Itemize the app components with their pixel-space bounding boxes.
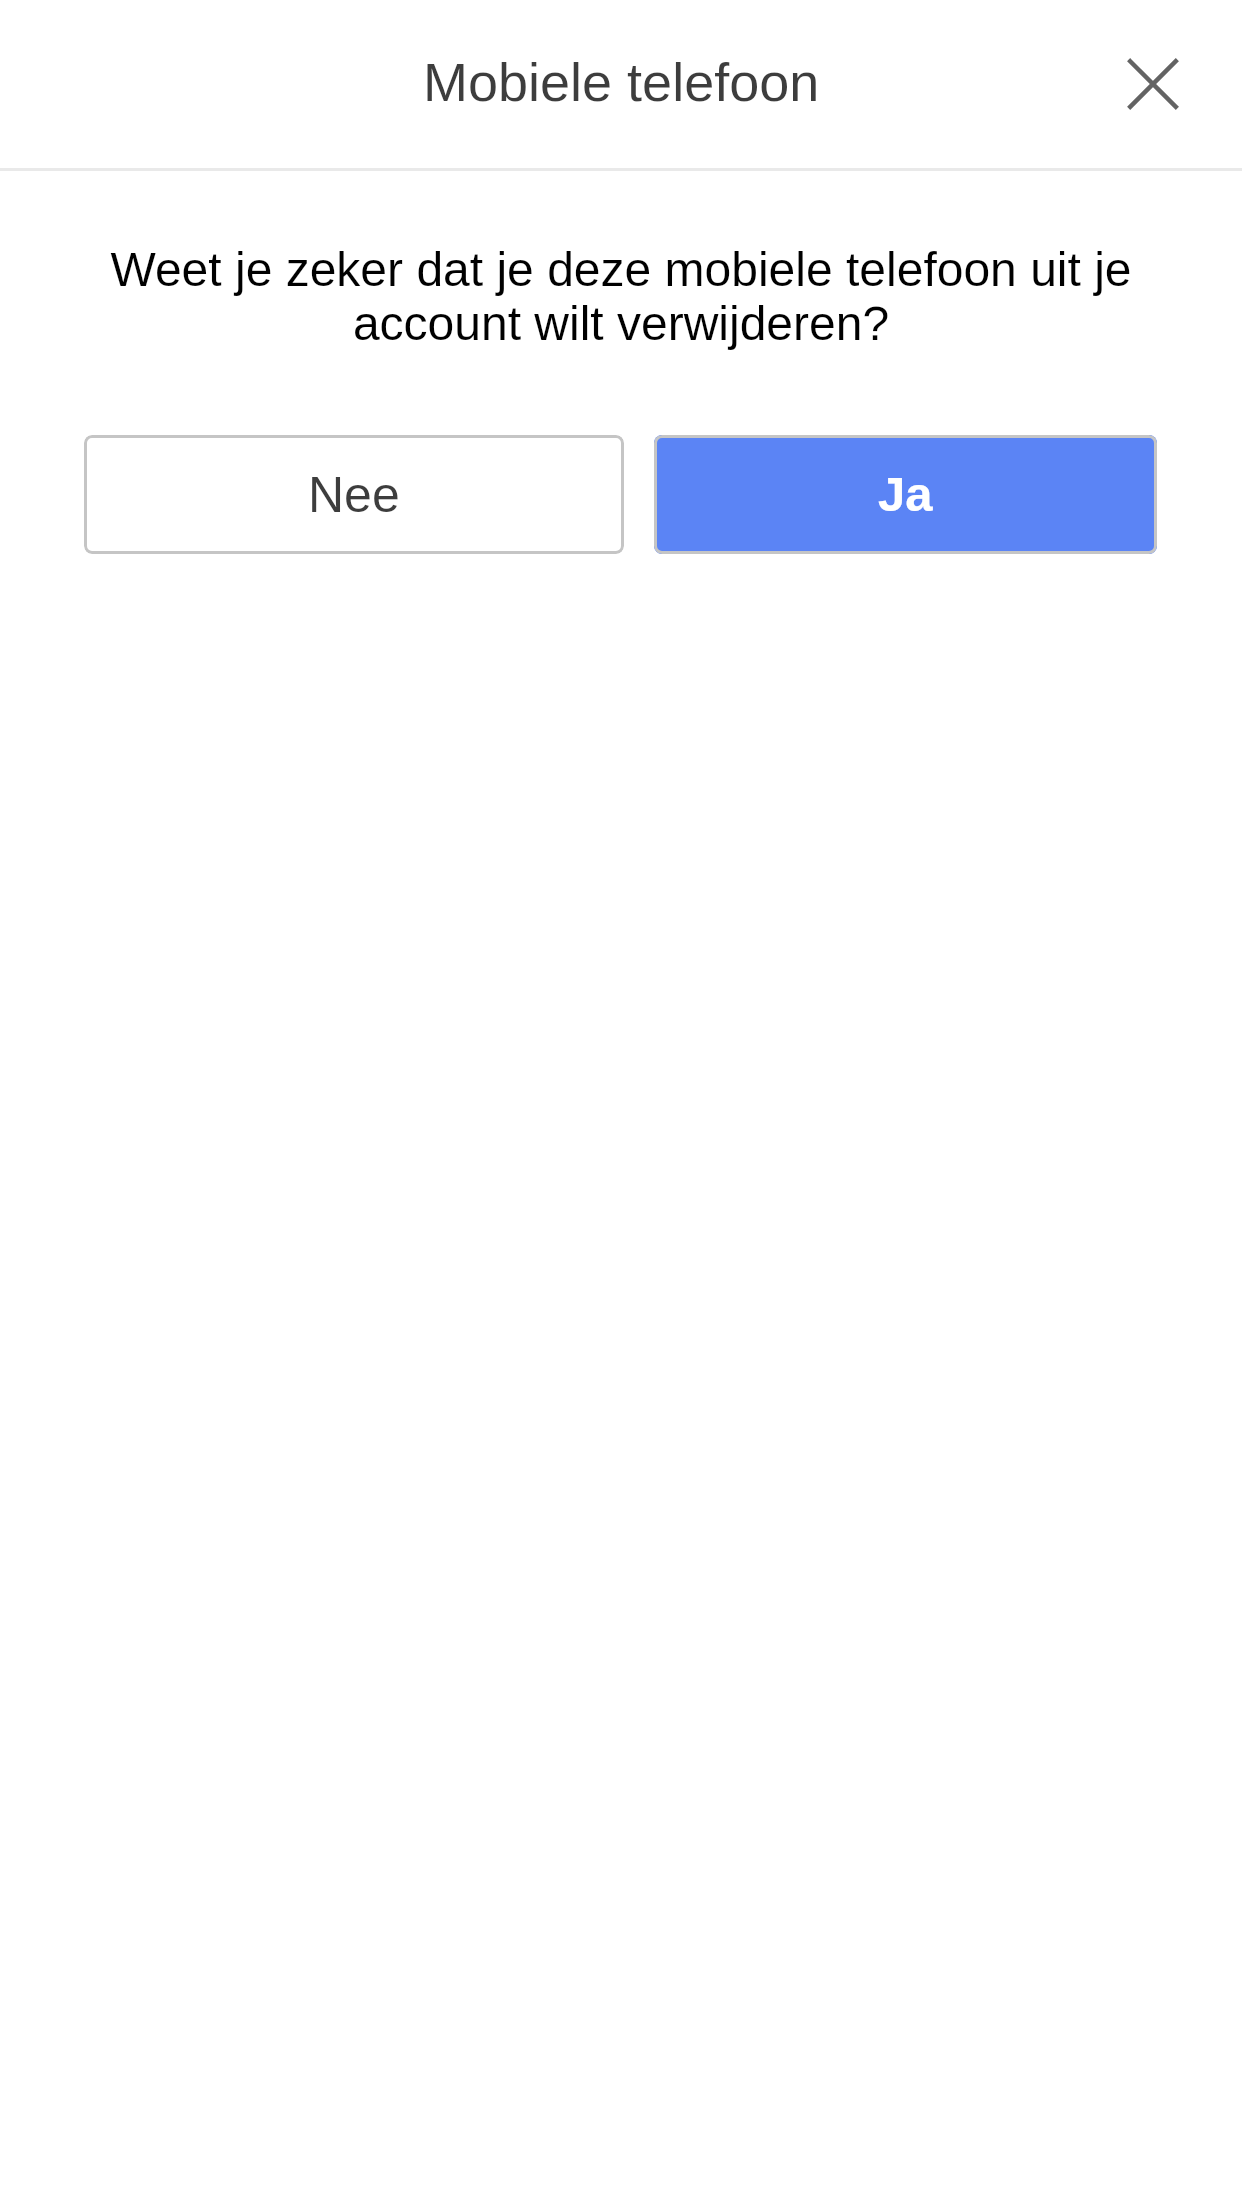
staticText: Mobiele telefoon <box>423 52 820 112</box>
button[interactable]: Nee <box>84 435 624 554</box>
staticText: Weet je zeker dat je deze mobiele telefo… <box>0 243 1242 297</box>
button[interactable]: Ja <box>654 435 1157 554</box>
staticText: Ja <box>878 467 933 522</box>
staticText: account wilt verwijderen? <box>0 297 1242 351</box>
staticText: Nee <box>308 467 400 523</box>
button[interactable]: Sluiten <box>1098 29 1208 139</box>
